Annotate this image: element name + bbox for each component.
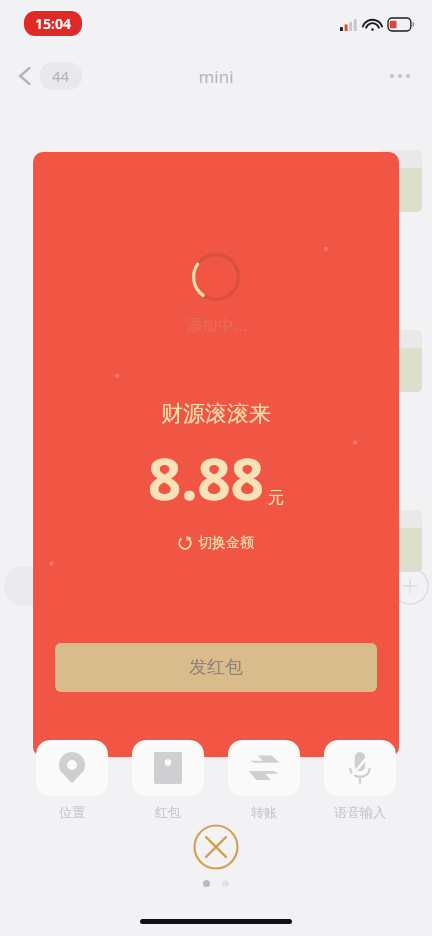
staticText: 财源滚滚来 (161, 400, 271, 428)
button[interactable]: 红包 (132, 740, 204, 820)
button[interactable]: 转账 (228, 740, 300, 820)
staticText: 发红包 (189, 656, 243, 679)
button[interactable]: More options (382, 66, 418, 86)
button[interactable]: Back, 44 unread (12, 58, 88, 94)
button[interactable]: Close (193, 824, 239, 870)
staticText: 8.88 (148, 438, 264, 517)
staticText: 红包 (155, 804, 181, 820)
button[interactable]: 语音输入 (324, 740, 396, 820)
staticText: 44 (52, 66, 70, 86)
button[interactable]: 切换金额 (170, 530, 262, 556)
staticText: 切换金额 (198, 534, 254, 552)
staticText: 元 (268, 488, 284, 508)
staticText: 15:04 (35, 14, 71, 33)
staticText: 位置 (59, 804, 85, 820)
staticText: mini (198, 65, 234, 88)
staticText: 添加中... (186, 314, 247, 336)
staticText: 转账 (251, 804, 277, 820)
button[interactable]: 位置 (36, 740, 108, 820)
button[interactable]: 发红包 (55, 643, 377, 692)
staticText: 语音输入 (334, 804, 386, 820)
